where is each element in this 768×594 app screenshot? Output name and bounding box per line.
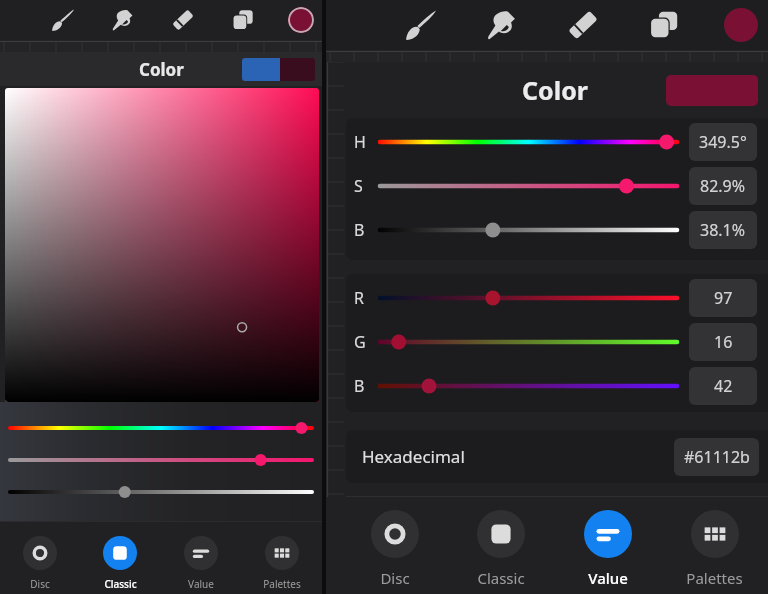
button[interactable] — [376, 332, 681, 352]
staticText: Palettes — [263, 577, 301, 591]
button[interactable]: Current colour — [288, 7, 314, 33]
button[interactable]: 16 — [689, 323, 757, 361]
button[interactable] — [376, 376, 681, 396]
button[interactable]: Eraser — [168, 5, 198, 35]
staticText: Palettes — [686, 568, 743, 588]
button[interactable] — [242, 58, 315, 81]
staticText: Classic — [477, 568, 525, 588]
button[interactable]: Value — [160, 522, 241, 594]
button[interactable]: Smudge — [481, 4, 523, 46]
button[interactable]: 82.9% — [689, 167, 757, 205]
button[interactable] — [5, 88, 319, 402]
staticText: #61112b — [684, 446, 750, 468]
button[interactable] — [376, 132, 681, 152]
button[interactable]: Layers — [643, 4, 685, 46]
button[interactable]: Brush — [48, 5, 78, 35]
button[interactable]: 42 — [689, 367, 757, 405]
button[interactable]: Classic — [448, 497, 554, 594]
staticText: Disc — [30, 577, 50, 591]
button[interactable]: Palettes — [661, 497, 768, 594]
button[interactable]: 38.1% — [689, 211, 757, 249]
button[interactable] — [8, 421, 314, 435]
staticText: 349.5° — [699, 131, 747, 153]
button[interactable]: Value — [554, 497, 661, 594]
button[interactable]: Brush — [400, 4, 442, 46]
staticText: Disc — [380, 568, 410, 588]
button[interactable]: Disc — [342, 497, 448, 594]
staticText: Value — [588, 568, 628, 588]
staticText: Value — [188, 577, 214, 591]
button[interactable] — [376, 220, 681, 240]
staticText: 42 — [714, 375, 733, 397]
staticText: 16 — [714, 331, 733, 353]
staticText: 97 — [714, 287, 733, 309]
button[interactable] — [8, 453, 314, 467]
staticText: Hexadecimal — [362, 445, 465, 468]
staticText: S — [354, 175, 363, 197]
button[interactable]: Hexadecimal — [346, 430, 768, 483]
button[interactable]: Eraser — [562, 4, 604, 46]
button[interactable]: Smudge — [108, 5, 138, 35]
button[interactable]: 349.5° — [689, 123, 757, 161]
button[interactable] — [376, 176, 681, 196]
button[interactable]: Palettes — [241, 522, 322, 594]
staticText: H — [354, 131, 366, 153]
staticText: 38.1% — [700, 219, 746, 241]
staticText: Color — [139, 58, 184, 81]
button[interactable]: Layers — [228, 5, 258, 35]
staticText: 82.9% — [700, 175, 746, 197]
button[interactable]: Colour swatch — [666, 75, 758, 106]
button[interactable]: Disc — [0, 522, 80, 594]
button[interactable] — [376, 288, 681, 308]
staticText: Color — [522, 73, 588, 107]
staticText: Classic — [104, 577, 137, 591]
button[interactable]: 97 — [689, 279, 757, 317]
staticText: G — [354, 331, 366, 353]
staticText: B — [354, 375, 365, 397]
staticText: B — [354, 219, 365, 241]
button[interactable]: Classic — [80, 522, 160, 594]
button[interactable] — [8, 485, 314, 499]
staticText: R — [354, 287, 364, 309]
button[interactable]: Current colour — [724, 8, 758, 42]
